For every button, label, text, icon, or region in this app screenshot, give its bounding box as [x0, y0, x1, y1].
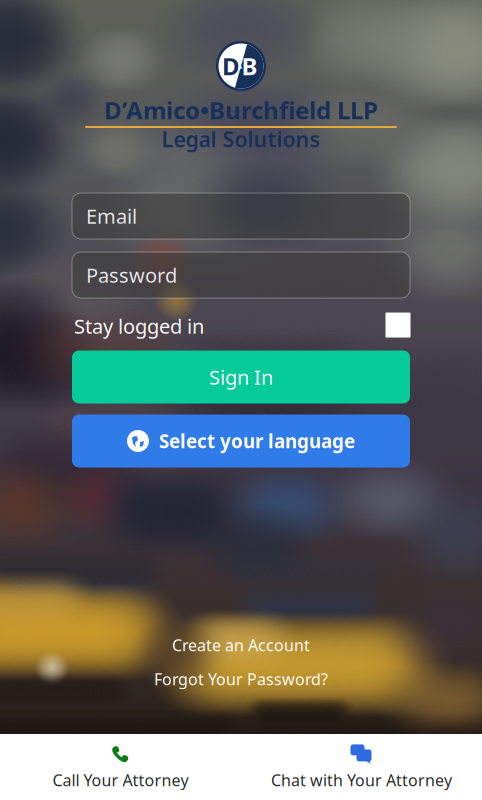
button[interactable]: Select your language [72, 414, 410, 467]
staticText: Stay logged in [74, 313, 204, 339]
button[interactable]: Email [72, 193, 410, 239]
staticText: Call Your Attorney [52, 769, 188, 791]
staticText: Create an Account [172, 634, 310, 656]
button[interactable]: Chat with Your Attorney [241, 734, 482, 800]
button[interactable]: Create an Account [172, 634, 310, 656]
button[interactable]: Password [72, 252, 410, 298]
staticText: D’Amico•Burchfield LLP [104, 94, 378, 126]
staticText: Chat with Your Attorney [271, 769, 452, 791]
staticText: Email [86, 203, 137, 229]
button[interactable]: Sign In [72, 350, 410, 403]
staticText: Legal Solutions [161, 125, 320, 153]
staticText: Password [86, 262, 177, 288]
button[interactable]: Forgot Your Password? [154, 668, 328, 690]
staticText: Sign In [209, 364, 273, 390]
button[interactable]: Call Your Attorney [0, 734, 241, 800]
staticText: D [222, 50, 240, 82]
button[interactable]: Stay logged in [385, 312, 410, 337]
staticText: Select your language [159, 429, 355, 453]
staticText: Forgot Your Password? [154, 668, 328, 690]
staticText: B [241, 50, 257, 82]
